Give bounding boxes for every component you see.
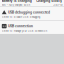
button[interactable]: USB connection [0,21,64,34]
staticText: 2:05 PM [53,3,62,7]
staticText: Select to disable USB debugging. [2,16,41,19]
staticText: USB debugging connected [8,10,50,14]
button[interactable]: USB debugging connected [0,7,64,20]
staticText: 85% • Fully charged soon [2,3,30,7]
button[interactable]: Battery is charging [0,0,64,6]
staticText: USB connection [8,24,33,28]
staticText: Select to manage your USB connection [2,29,47,33]
staticText: Battery is charging [2,0,32,3]
staticText: Charging slowly [36,0,62,3]
